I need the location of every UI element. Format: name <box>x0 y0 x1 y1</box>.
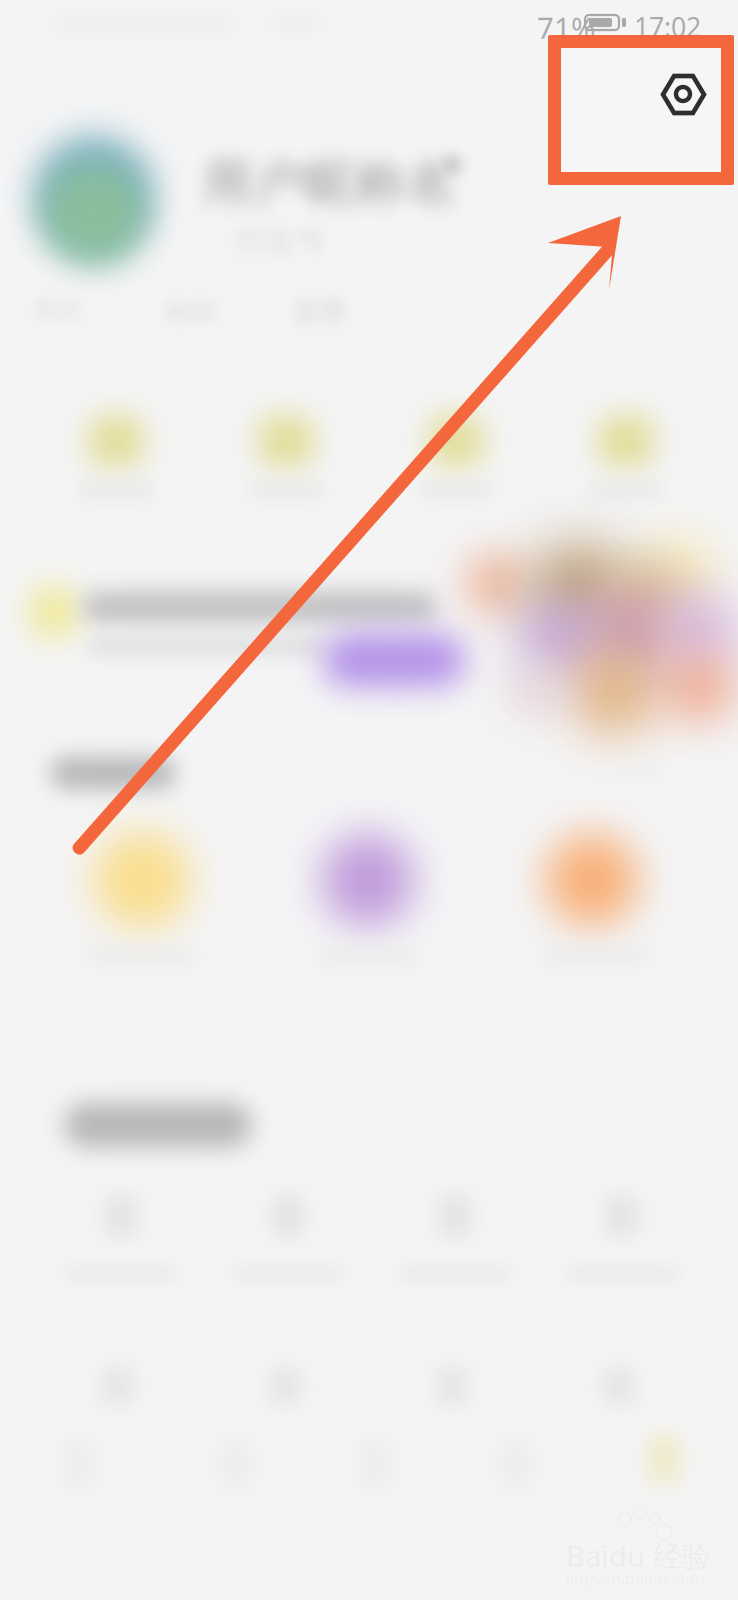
staticText: Baidu 经验 <box>566 1536 711 1575</box>
staticText: 17:02 <box>634 9 701 44</box>
button[interactable]: Settings <box>548 35 734 185</box>
staticText: 71% <box>537 8 595 47</box>
